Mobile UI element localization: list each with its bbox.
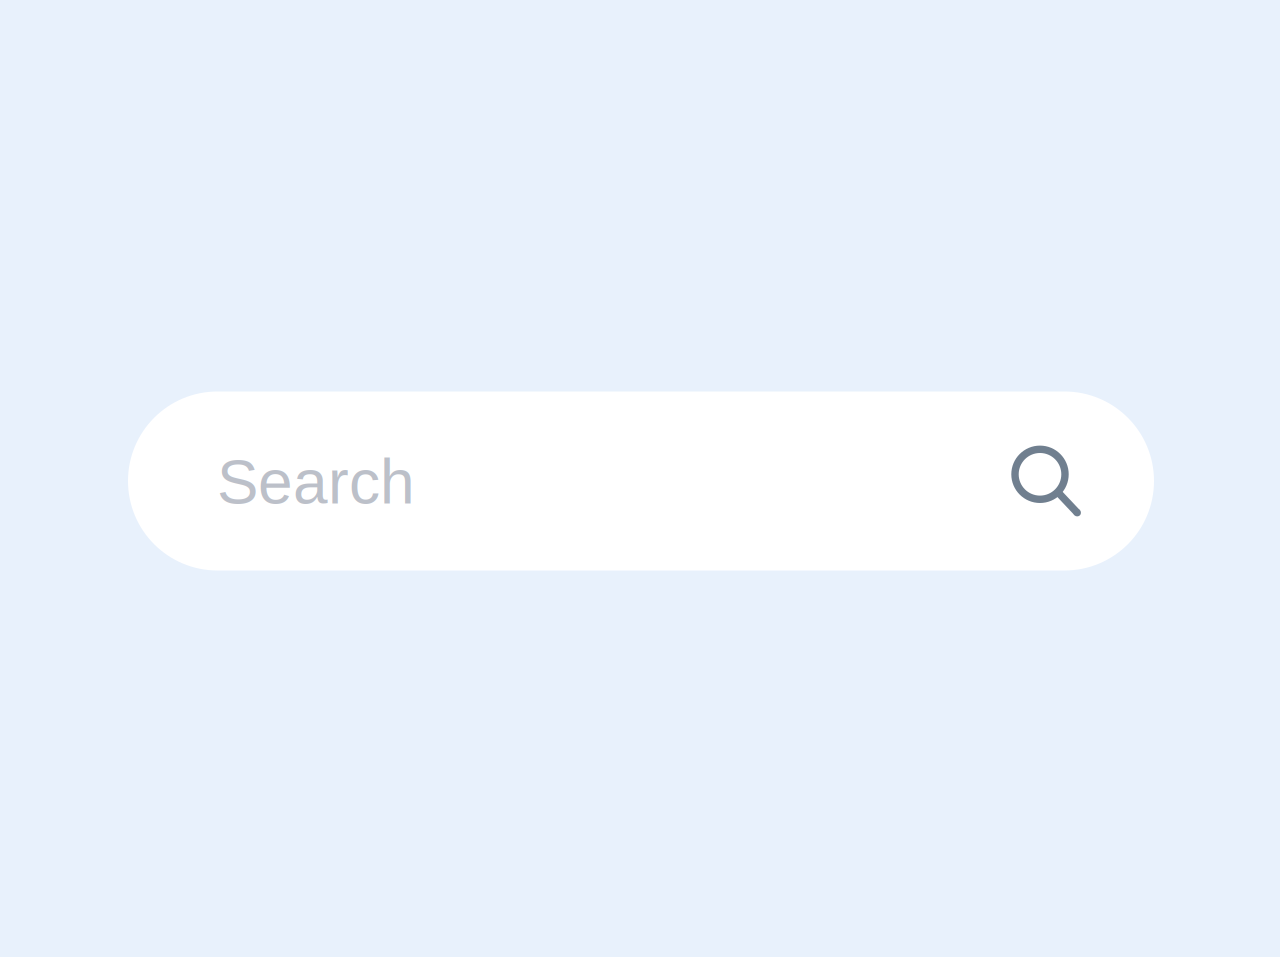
button[interactable]: Search — [1012, 391, 1154, 570]
staticText: Search — [217, 447, 415, 517]
button[interactable]: Search — [128, 391, 1012, 570]
